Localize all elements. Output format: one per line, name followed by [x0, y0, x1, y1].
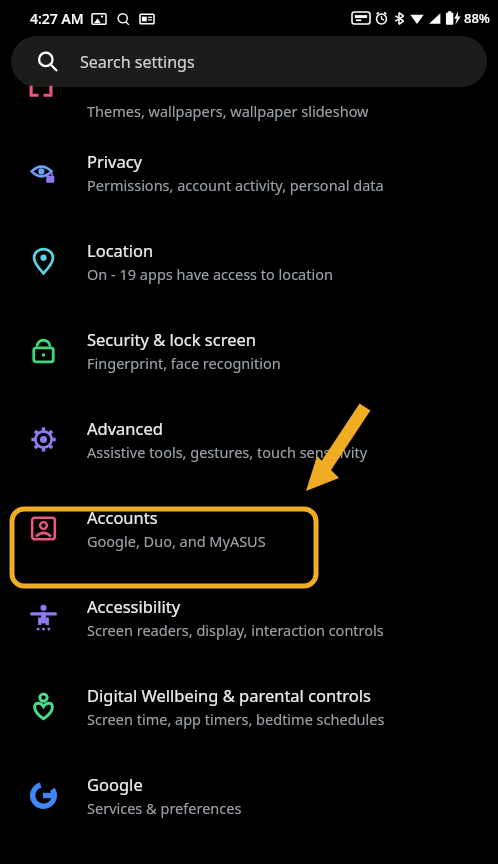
staticText: Screen time, app timers, bedtime schedul… — [87, 709, 385, 729]
button[interactable]: Accounts — [0, 484, 498, 573]
button[interactable]: Search settings — [11, 36, 487, 87]
button[interactable]: Privacy — [0, 128, 498, 217]
button[interactable]: Location — [0, 217, 498, 306]
staticText: Security & lock screen — [87, 328, 256, 350]
button[interactable]: Google — [0, 751, 498, 840]
staticText: Privacy — [87, 150, 143, 172]
button[interactable]: Themes, wallpapers, wallpaper slideshow — [0, 95, 498, 128]
staticText: Screen readers, display, interaction con… — [87, 620, 384, 640]
button[interactable]: Digital Wellbeing & parental controls — [0, 662, 498, 751]
staticText: Assistive tools, gestures, touch sensiti… — [87, 442, 368, 462]
staticText: Themes, wallpapers, wallpaper slideshow — [87, 101, 369, 121]
staticText: Advanced — [87, 417, 163, 439]
staticText: Google — [87, 773, 143, 795]
staticText: Accounts — [87, 506, 158, 528]
staticText: On - 19 apps have access to location — [87, 264, 333, 284]
staticText: 4:27 AM — [30, 9, 84, 28]
staticText: Location — [87, 239, 154, 261]
button[interactable]: Security & lock screen — [0, 306, 498, 395]
staticText: Google, Duo, and MyASUS — [87, 531, 266, 551]
staticText: Services & preferences — [87, 798, 242, 818]
staticText: Permissions, account activity, personal … — [87, 175, 384, 195]
button[interactable]: Advanced — [0, 395, 498, 484]
button[interactable]: Accessibility — [0, 573, 498, 662]
staticText: Search settings — [80, 51, 195, 73]
staticText: Accessibility — [87, 595, 181, 617]
staticText: Fingerprint, face recognition — [87, 353, 281, 373]
staticText: Digital Wellbeing & parental controls — [87, 684, 371, 706]
staticText: 88% — [464, 9, 490, 27]
